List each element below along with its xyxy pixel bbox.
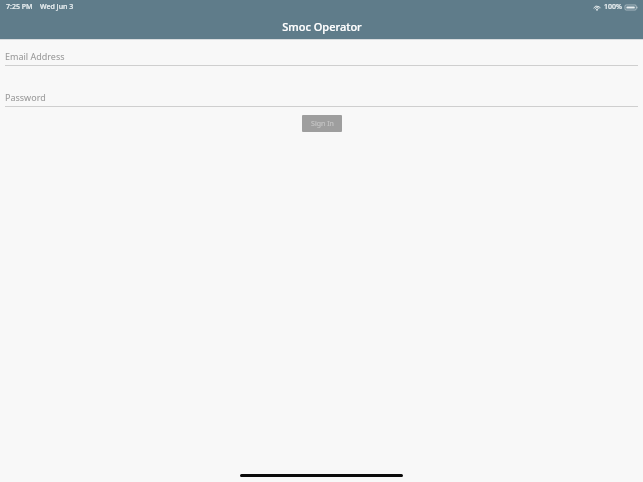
- staticText: 7:25 PM: [6, 2, 33, 12]
- staticText: Wed Jun 3: [40, 2, 74, 12]
- button[interactable]: Email Address: [0, 47, 643, 66]
- button[interactable]: Password: [0, 88, 643, 107]
- staticText: 100%: [604, 2, 622, 12]
- staticText: Email Address: [5, 50, 65, 62]
- staticText: Sign In: [311, 119, 334, 129]
- staticText: Smoc Operator: [282, 19, 362, 34]
- button[interactable]: Sign In: [302, 115, 342, 132]
- staticText: Password: [5, 91, 46, 103]
